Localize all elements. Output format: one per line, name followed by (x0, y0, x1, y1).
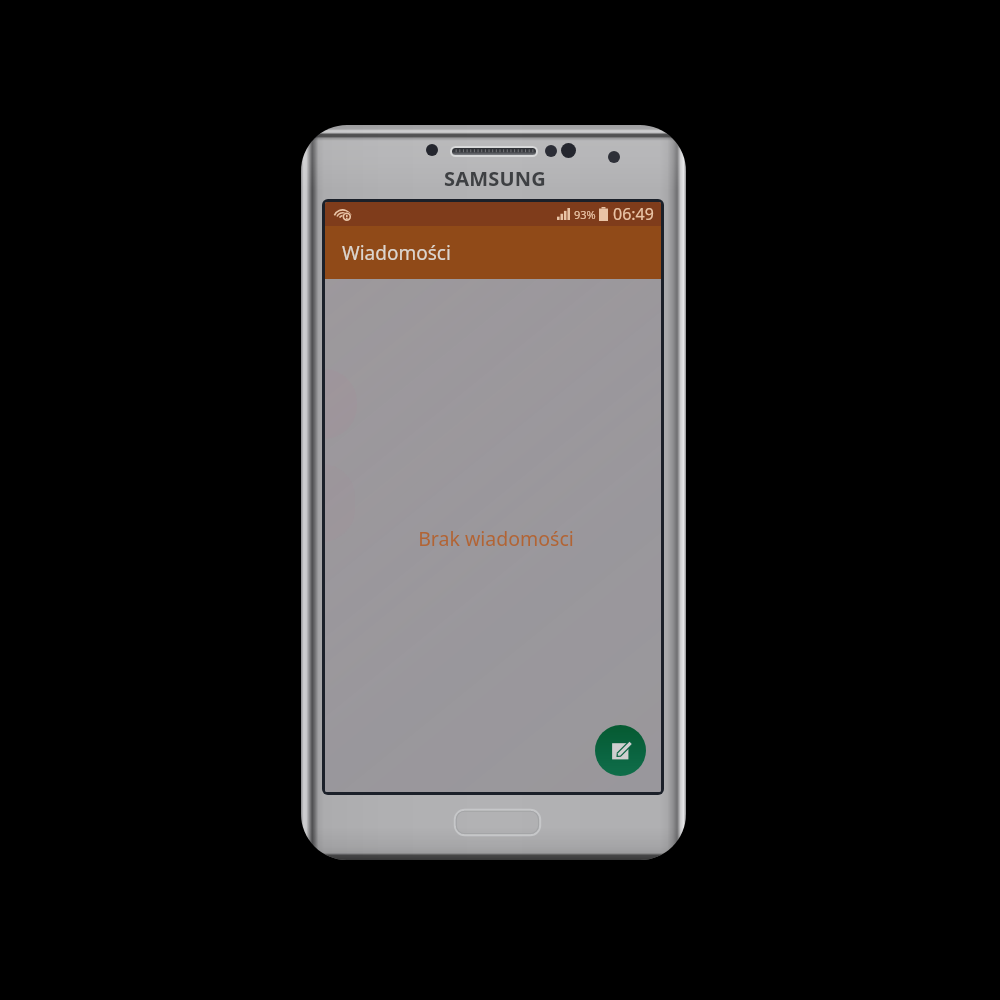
staticText: 93% (574, 207, 596, 222)
staticText: SAMSUNG (444, 165, 546, 192)
staticText: 06:49 (613, 203, 654, 225)
staticText: Brak wiadomości (418, 525, 574, 552)
staticText: Wiadomości (342, 240, 451, 266)
button[interactable]: Nowa wiadomość (595, 725, 646, 776)
button[interactable]: Home (454, 809, 541, 836)
